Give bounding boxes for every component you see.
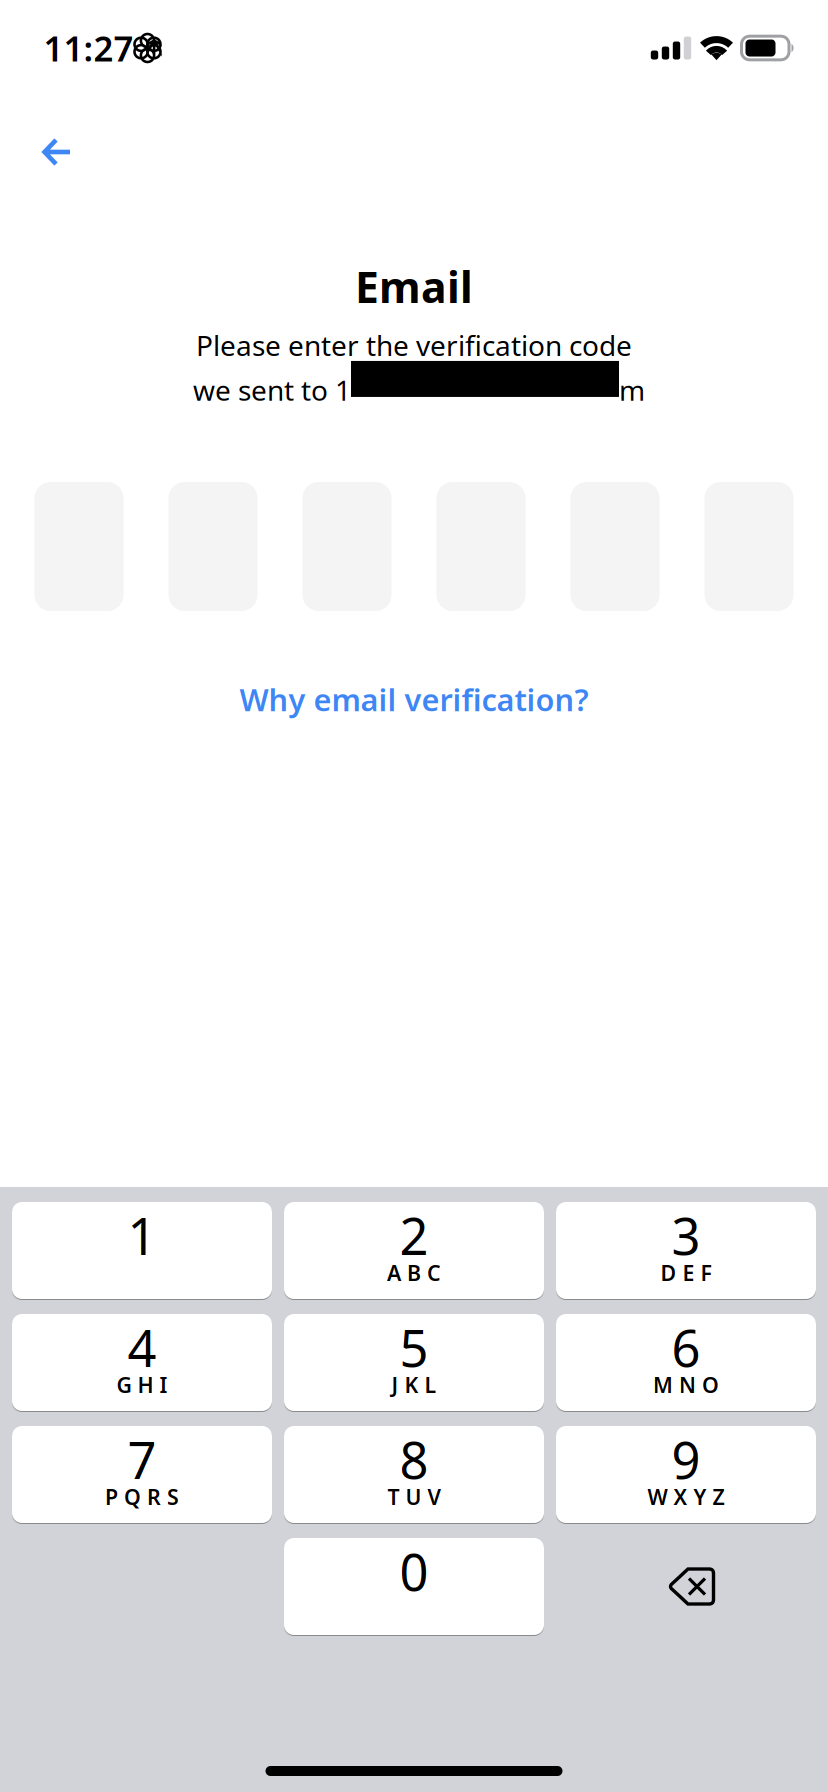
button[interactable]: Back xyxy=(0,63,98,181)
staticText: we sent to 1 xyxy=(193,371,351,409)
button[interactable]: 9 xyxy=(556,1426,816,1523)
staticText: 3 xyxy=(671,1202,700,1269)
staticText: P Q R S xyxy=(105,1483,179,1511)
button[interactable]: 1 xyxy=(12,1202,272,1299)
button[interactable]: 0 xyxy=(284,1538,544,1635)
button[interactable]: 8 xyxy=(284,1426,544,1523)
staticText: 8 xyxy=(399,1426,428,1493)
staticText: 0 xyxy=(399,1538,428,1605)
button[interactable]: 3 xyxy=(556,1202,816,1299)
staticText: G H I xyxy=(116,1371,167,1399)
button[interactable]: 6 xyxy=(556,1314,816,1411)
staticText: W X Y Z xyxy=(647,1483,724,1511)
button[interactable]: 7 xyxy=(12,1426,272,1523)
button[interactable]: 2 xyxy=(284,1202,544,1299)
staticText: 1 xyxy=(127,1202,156,1269)
staticText: T U V xyxy=(387,1483,440,1511)
staticText: 11:27 xyxy=(43,25,133,71)
staticText: D E F xyxy=(660,1259,711,1287)
staticText: 5 xyxy=(399,1314,428,1381)
staticText: Email xyxy=(355,258,473,315)
staticText: 6 xyxy=(671,1314,700,1381)
staticText: 2 xyxy=(399,1202,428,1269)
button[interactable]: Why email verification? xyxy=(231,671,596,728)
staticText: 4 xyxy=(127,1314,156,1381)
staticText: m xyxy=(619,371,645,409)
button[interactable]: 5 xyxy=(284,1314,544,1411)
staticText: 7 xyxy=(127,1426,156,1493)
button[interactable]: Delete xyxy=(556,1538,816,1635)
staticText: A B C xyxy=(387,1259,441,1287)
staticText: J K L xyxy=(391,1371,436,1399)
button[interactable]: 4 xyxy=(12,1314,272,1411)
staticText: M N O xyxy=(653,1371,719,1399)
staticText: Why email verification? xyxy=(239,679,588,720)
staticText: Please enter the verification code xyxy=(196,327,632,364)
staticText: 9 xyxy=(671,1426,700,1493)
